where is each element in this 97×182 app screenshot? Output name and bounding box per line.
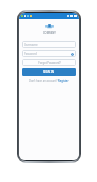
staticText: SIGN IN xyxy=(43,70,55,74)
staticText: Don't have an account? xyxy=(29,79,58,83)
button[interactable]: Password xyxy=(22,50,76,57)
button[interactable]: SIGN IN xyxy=(22,68,76,76)
staticText: Register xyxy=(58,79,69,83)
button[interactable]: Register xyxy=(58,79,69,83)
button[interactable]: Forgot Password? xyxy=(22,59,76,66)
staticText: Username xyxy=(24,43,38,47)
button[interactable]: Show password xyxy=(70,52,74,56)
staticText: Password xyxy=(24,52,37,56)
staticText: Forgot Password? xyxy=(38,61,61,65)
staticText: COMPANY xyxy=(43,31,56,35)
button[interactable]: Username xyxy=(22,41,76,48)
